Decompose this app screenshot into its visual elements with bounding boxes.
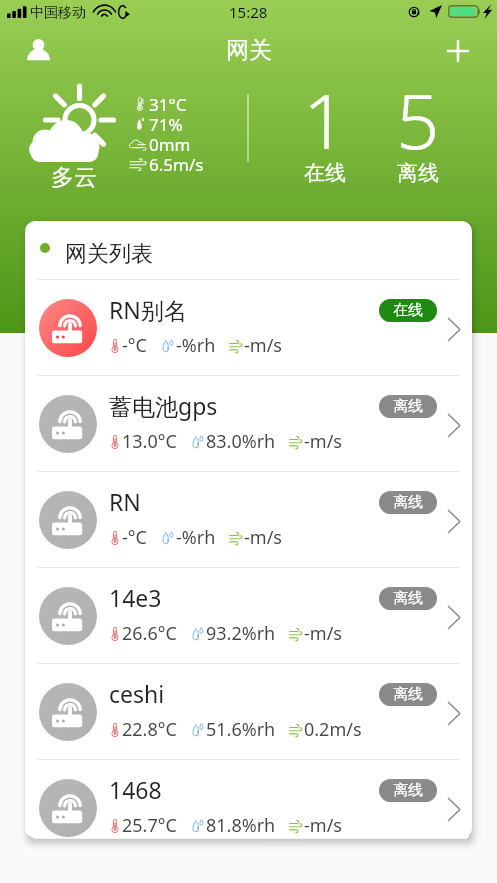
staticText: 0mm [149, 133, 191, 153]
staticText: 31°C [149, 93, 187, 113]
staticText: RN别名 [109, 294, 187, 325]
staticText: 离线 [393, 589, 423, 608]
staticText: ceshi [109, 678, 165, 709]
button[interactable]: 1468 [25, 760, 472, 838]
staticText: 中国移动 [30, 4, 86, 22]
staticText: RN [109, 486, 141, 517]
button[interactable]: 14e3 [25, 568, 472, 663]
staticText: 在线 [304, 160, 346, 186]
staticText: -m/s [304, 429, 342, 454]
staticText: 14e3 [109, 582, 162, 613]
staticText: -%rh [176, 525, 216, 550]
staticText: -°C [122, 525, 147, 550]
staticText: -°C [122, 333, 147, 358]
staticText: -m/s [244, 525, 282, 550]
staticText: 离线 [393, 781, 423, 800]
staticText: 蓄电池gps [109, 390, 218, 421]
staticText: 离线 [393, 685, 423, 704]
staticText: -m/s [244, 333, 282, 358]
button[interactable]: RN [25, 472, 472, 567]
staticText: 51.6%rh [206, 717, 276, 742]
staticText: -m/s [304, 621, 342, 646]
staticText: -%rh [176, 333, 216, 358]
staticText: 81.8%rh [206, 813, 276, 838]
staticText: 26.6°C [122, 621, 177, 646]
staticText: 网关 [226, 36, 272, 65]
staticText: -m/s [304, 813, 342, 838]
staticText: 离线 [393, 493, 423, 512]
staticText: 1468 [109, 774, 162, 805]
staticText: 离线 [393, 397, 423, 416]
staticText: 15:28 [229, 2, 268, 22]
staticText: 13.0°C [122, 429, 177, 454]
button[interactable]: Add [436, 29, 480, 73]
staticText: 离线 [397, 160, 439, 186]
button[interactable]: 蓄电池gps [25, 376, 472, 471]
staticText: 1 [303, 68, 347, 172]
staticText: 5 [396, 68, 440, 172]
staticText: 6.5m/s [149, 153, 204, 173]
staticText: 在线 [393, 301, 423, 320]
staticText: 多云 [51, 163, 97, 192]
button[interactable]: Profile [16, 29, 60, 73]
staticText: 71% [149, 113, 183, 133]
staticText: 22.8°C [122, 717, 177, 742]
button[interactable]: RN别名 [25, 280, 472, 375]
staticText: 网关列表 [65, 240, 153, 268]
staticText: 0.2m/s [304, 717, 362, 742]
staticText: 25.7°C [122, 813, 177, 838]
staticText: 93.2%rh [206, 621, 276, 646]
button[interactable]: ceshi [25, 664, 472, 759]
staticText: 83.0%rh [206, 429, 276, 454]
